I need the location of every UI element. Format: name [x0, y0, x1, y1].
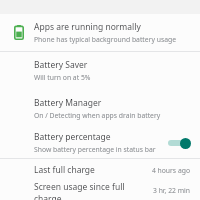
button[interactable]: Battery Saver [0, 52, 200, 89]
staticText: Phone has typical background battery usa… [34, 35, 176, 44]
staticText: Apps are running normally [34, 21, 141, 33]
button[interactable]: Last full charge [0, 159, 200, 181]
other: Battery status [14, 25, 24, 40]
button[interactable]: Battery status [0, 14, 200, 51]
staticText: Screen usage since full charge [34, 181, 152, 200]
staticText: Battery percentage [34, 131, 111, 143]
staticText: Last full charge [34, 164, 151, 176]
button[interactable]: Screen usage since full charge [0, 181, 200, 200]
staticText: Battery Saver [34, 59, 88, 71]
button[interactable]: Battery percentage [0, 127, 200, 158]
staticText: On / Detecting when apps drain battery [34, 111, 161, 120]
staticText: 3 hr, 22 min [152, 186, 190, 195]
button[interactable]: Battery Manager [0, 89, 200, 127]
staticText: Will turn on at 5% [34, 73, 91, 82]
staticText: Show battery percentage in status bar [34, 145, 156, 154]
button[interactable]: Battery percentage toggle [166, 134, 192, 152]
staticText: 4 hours ago [151, 166, 190, 175]
staticText: Battery Manager [34, 97, 102, 109]
